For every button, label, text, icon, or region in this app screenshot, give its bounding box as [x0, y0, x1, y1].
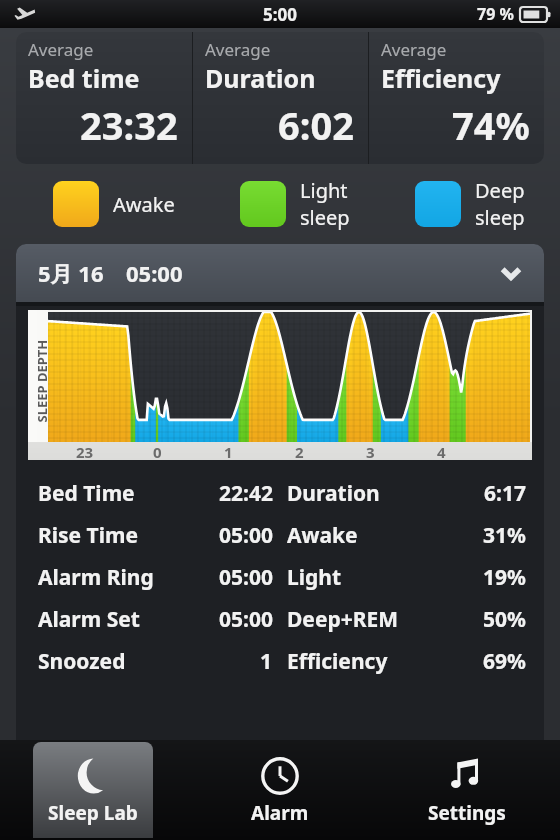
staticText: 79 % — [477, 3, 514, 25]
staticText: 1 — [260, 647, 273, 676]
button[interactable]: Rise Time — [16, 514, 544, 556]
button[interactable]: Alarm Ring — [16, 556, 544, 598]
button[interactable]: Bed Time — [16, 472, 544, 514]
staticText: 23:32 — [80, 99, 178, 151]
staticText: Average — [205, 38, 271, 61]
staticText: Efficiency — [381, 61, 501, 95]
staticText: SLEEP DEPTH — [32, 339, 50, 422]
button[interactable]: Alarm Set — [16, 598, 544, 640]
staticText: 19% — [483, 563, 526, 592]
staticText: 74% — [452, 99, 530, 151]
staticText: 50% — [483, 605, 526, 634]
staticText: Alarm Ring — [38, 563, 154, 592]
staticText: Duration — [205, 61, 316, 95]
other: Collapse — [500, 262, 522, 284]
staticText: 31% — [483, 521, 526, 550]
staticText: Rise Time — [38, 521, 139, 550]
staticText: 2 — [295, 442, 304, 460]
staticText: Sleep Lab — [48, 800, 138, 826]
staticText: Duration — [287, 479, 380, 508]
staticText: 6:02 — [278, 99, 354, 151]
staticText: 05:00 — [219, 521, 273, 550]
staticText: Average — [28, 38, 94, 61]
staticText: Average — [381, 38, 447, 61]
button[interactable]: Snoozed — [16, 640, 544, 682]
staticText: Light — [300, 177, 348, 204]
staticText: 23 — [76, 442, 94, 460]
staticText: 5:00 — [263, 3, 297, 26]
staticText: 22:42 — [219, 479, 273, 508]
staticText: Deep+REM — [287, 605, 399, 634]
staticText: Alarm Set — [38, 605, 140, 634]
button[interactable]: Settings — [407, 742, 527, 838]
staticText: Light — [287, 563, 342, 592]
button[interactable]: Alarm — [220, 742, 340, 838]
staticText: 05:00 — [126, 258, 183, 288]
button[interactable]: Sleep Lab — [33, 742, 153, 838]
button[interactable]: 5月 16 — [16, 244, 544, 302]
staticText: 5月 16 — [38, 258, 104, 288]
staticText: Bed time — [28, 61, 140, 95]
staticText: 0 — [153, 442, 162, 460]
staticText: sleep — [300, 204, 350, 231]
staticText: 69% — [483, 647, 526, 676]
staticText: Efficiency — [287, 647, 388, 676]
staticText: 6:17 — [484, 479, 526, 508]
staticText: sleep — [475, 204, 525, 231]
staticText: Settings — [428, 800, 506, 826]
staticText: Deep — [475, 177, 525, 204]
button[interactable]: SLEEP DEPTH — [28, 310, 532, 460]
staticText: Bed Time — [38, 479, 135, 508]
staticText: 05:00 — [219, 563, 273, 592]
staticText: Awake — [113, 191, 175, 218]
staticText: Snoozed — [38, 647, 126, 676]
staticText: 4 — [437, 442, 446, 460]
staticText: 1 — [224, 442, 233, 460]
staticText: 05:00 — [219, 605, 273, 634]
staticText: Alarm — [251, 800, 309, 826]
staticText: Awake — [287, 521, 358, 550]
staticText: 3 — [366, 442, 375, 460]
